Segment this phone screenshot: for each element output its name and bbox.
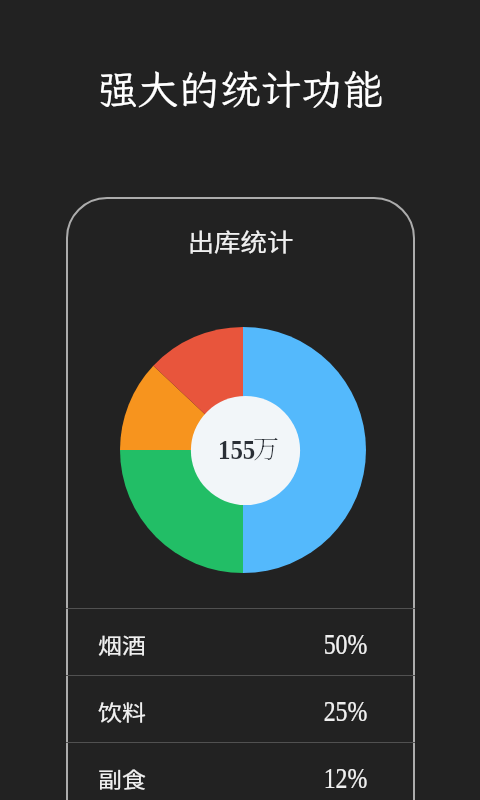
button[interactable]: 烟酒 xyxy=(66,609,415,675)
button[interactable]: 出库统计环形图 xyxy=(120,327,366,573)
button[interactable]: 副食 xyxy=(66,743,415,800)
staticText: 强大的统计功能 xyxy=(0,62,480,116)
staticText: 饮料 xyxy=(98,696,146,726)
staticText: 烟酒 xyxy=(98,629,146,659)
button[interactable]: 饮料 xyxy=(66,676,415,742)
staticText: 出库统计 xyxy=(49,223,432,258)
staticText: 25% xyxy=(324,695,368,727)
staticText: 万 xyxy=(253,428,280,465)
staticText: 155 xyxy=(218,435,256,465)
staticText: 12% xyxy=(324,762,368,794)
staticText: 50% xyxy=(324,628,368,660)
staticText: 副食 xyxy=(98,763,146,793)
